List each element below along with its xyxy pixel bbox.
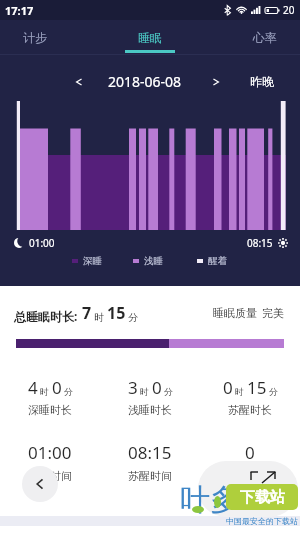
button[interactable]: Next day (206, 72, 226, 92)
staticText: 0 (223, 376, 233, 399)
button[interactable]: Back (22, 466, 58, 502)
staticText: 08:15 (247, 236, 273, 250)
staticText: 叶多 (180, 481, 240, 519)
staticText: 分 (64, 386, 73, 397)
staticText: 深睡 (83, 255, 102, 267)
staticText: 下载站 (240, 488, 285, 507)
staticText: 0 (152, 376, 162, 399)
staticText: 分 (269, 386, 278, 397)
staticText: 08:15 (128, 441, 172, 464)
staticText: 15 (107, 302, 126, 324)
button[interactable]: 昨晚 (250, 74, 274, 89)
staticText: 2018-06-08 (108, 72, 182, 91)
staticText: 01:00 (28, 441, 72, 464)
staticText: 时 (40, 386, 49, 397)
staticText: 深睡时长 (28, 403, 72, 417)
staticText: 入睡时间 (28, 469, 72, 483)
staticText: 浅睡时长 (128, 403, 172, 417)
staticText: 时 (140, 386, 149, 397)
staticText: 20 (283, 3, 295, 17)
staticText: 浅睡 (144, 255, 163, 267)
staticText: 7 (82, 302, 92, 324)
staticText: 中国最安全的下载站 (226, 516, 298, 526)
staticText: 睡眠质量 (213, 306, 257, 320)
staticText: 4 (28, 376, 38, 399)
staticText: 心率 (253, 30, 277, 45)
staticText: 苏醒时长 (228, 403, 272, 417)
staticText: 15 (247, 376, 267, 399)
staticText: 苏醒时间 (128, 469, 172, 483)
staticText: 分 (128, 311, 138, 324)
staticText: 01:00 (29, 236, 55, 250)
staticText: 时 (235, 386, 244, 397)
staticText: 昨晚 (250, 74, 274, 89)
staticText: 时 (94, 311, 104, 324)
staticText: 分 (164, 386, 173, 397)
staticText: 0 (245, 441, 255, 464)
staticText: 0 (52, 376, 62, 399)
staticText: 计步 (23, 30, 47, 45)
staticText: 总睡眠时长: (14, 308, 78, 324)
button[interactable]: 睡眠 (125, 20, 175, 54)
staticText: 醒着 (208, 255, 227, 267)
button[interactable]: 计步 (10, 20, 60, 54)
staticText: 睡眠 (138, 30, 162, 45)
button[interactable]: Previous day (69, 72, 89, 92)
staticText: 苏醒次数 (228, 469, 272, 483)
staticText: 完美 (262, 306, 284, 320)
staticText: 17:17 (5, 3, 34, 18)
button[interactable]: 心率 (240, 20, 290, 54)
staticText: 3 (128, 376, 138, 399)
